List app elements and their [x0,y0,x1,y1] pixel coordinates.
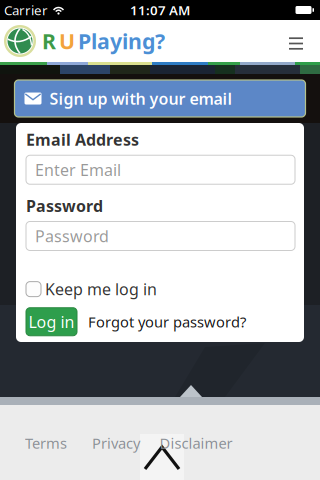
button[interactable] [140,434,184,480]
staticText: Keep me log in [45,278,157,300]
staticText: Sign up with your email [49,88,232,109]
staticText: Privacy [92,433,140,453]
button[interactable]: Terms [25,433,67,453]
button[interactable]: Disclaimer [159,433,232,453]
staticText: Disclaimer [159,433,232,453]
button[interactable]: Log in [26,308,77,336]
button[interactable] [289,32,320,50]
staticText: U [59,27,75,55]
button[interactable]: Forgot your password? [88,312,246,331]
staticText: Password [26,195,103,216]
staticText: Playing? [78,27,165,55]
staticText: Forgot your password? [88,312,246,331]
staticText: 11:07 AM [130,1,190,19]
button[interactable]: Password [26,221,295,250]
staticText: R [42,27,56,55]
staticText: Email Address [26,129,139,150]
staticText: Log in [28,311,74,332]
staticText: Enter Email [35,159,121,180]
button[interactable]: Keep me log in [26,278,157,300]
button[interactable]: Enter Email [26,155,295,184]
staticText: Password [35,225,109,247]
button[interactable]: Sign up with your email [14,80,305,117]
staticText: Carrier [4,1,48,19]
button[interactable]: Privacy [92,433,140,453]
staticText: Terms [25,433,67,453]
